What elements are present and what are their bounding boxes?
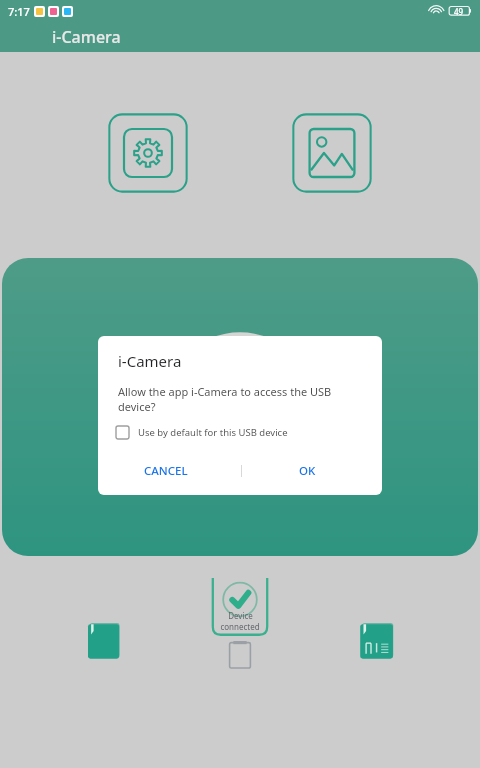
staticText: 7:17 (8, 4, 30, 19)
staticText: CANCEL (144, 463, 188, 479)
button[interactable]: CANCEL (134, 457, 198, 485)
staticText: Device (228, 610, 253, 621)
button[interactable]: OK (289, 457, 326, 485)
staticText: Use by default for this USB device (138, 426, 288, 439)
button[interactable]: Gallery (292, 113, 372, 193)
staticText: OK (299, 463, 316, 479)
button[interactable]: Settings (108, 113, 188, 193)
button[interactable]: Device connected (200, 574, 280, 672)
staticText: i-Camera (118, 351, 182, 371)
button[interactable]: Guide details (356, 620, 398, 662)
staticText: 49 (454, 6, 464, 17)
staticText: i-Camera (52, 26, 121, 48)
button[interactable] (2, 258, 478, 556)
button[interactable]: Guide (84, 620, 124, 662)
button[interactable]: Use by default for this USB device (116, 426, 288, 439)
staticText: connected (220, 621, 260, 632)
staticText: Allow the app i-Camera to access the USB… (118, 384, 366, 414)
